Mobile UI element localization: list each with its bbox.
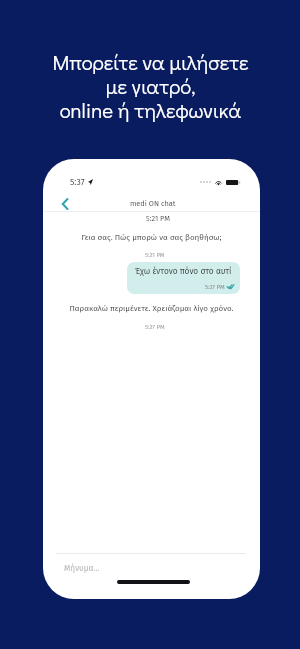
staticText: medi ON chat (130, 199, 176, 208)
staticText: 5:27 PM (205, 283, 225, 290)
button[interactable]: Back (57, 196, 73, 212)
staticText: Γεια σας. Πώς μπορώ να σας βοηθήσω; (48, 233, 255, 243)
staticText: 5:27 PM (145, 323, 165, 330)
staticText: Μπορείτε να μιλήσετε με γιατρό, online ή… (52, 49, 249, 123)
button[interactable]: Έχω έντονο πόνο στο αυτί (127, 262, 240, 294)
staticText: Έχω έντονο πόνο στο αυτί (135, 266, 232, 276)
staticText: 5:37 (70, 177, 85, 187)
button[interactable]: Μήνυμα... (43, 559, 260, 577)
staticText: 5:21 PM (145, 251, 165, 258)
staticText: 5:21 PM (146, 214, 170, 223)
staticText: Παρακαλώ περιμένετε. Χρειάζομαι λίγο χρό… (47, 304, 256, 314)
staticText: Μήνυμα... (64, 563, 100, 573)
